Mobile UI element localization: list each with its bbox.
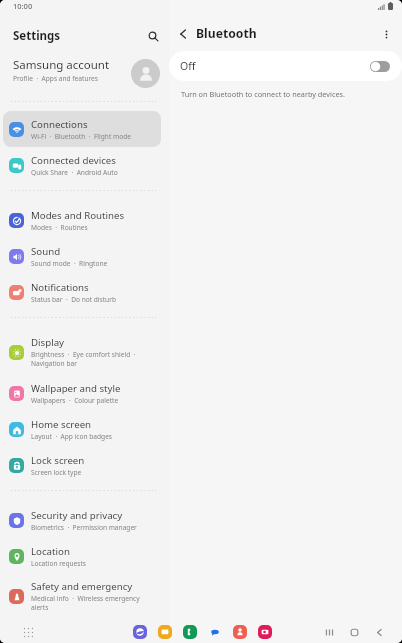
button[interactable]: Sound: [3, 238, 161, 274]
staticText: Wallpapers · Colour palette: [31, 396, 119, 405]
staticText: Safety and emergency: [31, 580, 133, 593]
button[interactable]: Recents: [325, 628, 334, 637]
staticText: Connected devices: [31, 154, 116, 167]
staticText: Profile · Apps and features: [13, 74, 98, 83]
staticText: Notifications: [31, 281, 89, 294]
button[interactable]: Back: [175, 26, 191, 42]
staticText: Wallpaper and style: [31, 382, 121, 395]
staticText: Off: [180, 59, 196, 73]
staticText: Modes and Routines: [31, 209, 125, 222]
button[interactable]: Gallery: [258, 625, 272, 639]
staticText: Sound: [31, 245, 61, 258]
staticText: Biometrics · Permission manager: [31, 523, 137, 532]
staticText: Quick Share · Android Auto: [31, 168, 118, 177]
staticText: Lock screen: [31, 454, 85, 467]
staticText: Location requests: [31, 559, 87, 568]
button[interactable]: Safety and emergency: [3, 574, 161, 617]
button[interactable]: Display: [3, 329, 161, 375]
button[interactable]: Notifications: [3, 274, 161, 310]
button[interactable]: Modes and Routines: [3, 202, 161, 238]
staticText: Status bar · Do not disturb: [31, 295, 116, 304]
button[interactable]: Home: [350, 628, 359, 637]
staticText: Wi-Fi · Bluetooth · Flight mode: [31, 132, 131, 141]
staticText: Layout · App icon badges: [31, 432, 113, 441]
staticText: Security and privacy: [31, 509, 123, 522]
staticText: Medical info · Wireless emergency alerts: [31, 594, 158, 612]
staticText: Bluetooth: [196, 25, 257, 42]
button[interactable]: Security and privacy: [3, 502, 161, 538]
button[interactable]: Lock screen: [3, 447, 161, 483]
button[interactable]: Connections: [3, 111, 161, 147]
button[interactable]: Wallpaper and style: [3, 375, 161, 411]
button[interactable]: More options: [378, 26, 394, 42]
button[interactable]: Internet: [133, 625, 147, 639]
button[interactable]: My Files: [158, 625, 172, 639]
staticText: Settings: [13, 28, 61, 44]
button[interactable]: Connected devices: [3, 147, 161, 183]
button[interactable]: Apps: [20, 624, 36, 640]
button[interactable]: Samsung account: [0, 42, 169, 88]
staticText: Display: [31, 336, 65, 349]
staticText: Connections: [31, 118, 88, 131]
staticText: Brightness · Eye comfort shield · Naviga…: [31, 350, 158, 368]
button[interactable]: Back: [375, 628, 384, 637]
staticText: Location: [31, 545, 70, 558]
staticText: Screen lock type: [31, 468, 82, 477]
staticText: Turn on Bluetooth to connect to nearby d…: [181, 89, 345, 99]
button[interactable]: Off: [169, 51, 402, 81]
button[interactable]: Messages: [208, 625, 222, 639]
button[interactable]: Contacts: [233, 625, 247, 639]
button[interactable]: Search: [144, 27, 162, 45]
button[interactable]: Home screen: [3, 411, 161, 447]
staticText: Samsung account: [13, 57, 110, 73]
staticText: Sound mode · Ringtone: [31, 259, 108, 268]
staticText: Modes · Routines: [31, 223, 88, 232]
button[interactable]: Phone: [183, 625, 197, 639]
staticText: 10:00: [13, 1, 33, 11]
button[interactable]: Location: [3, 538, 161, 574]
staticText: Home screen: [31, 418, 92, 431]
